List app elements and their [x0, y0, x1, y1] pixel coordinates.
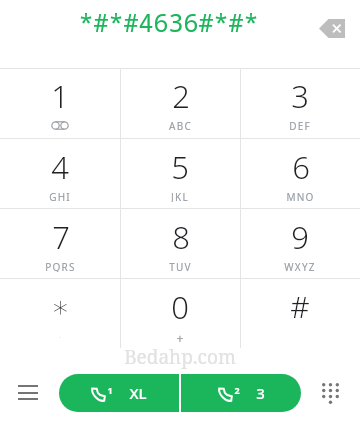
button[interactable]: 8 — [120, 209, 240, 278]
staticText: WXYZ — [284, 260, 316, 272]
staticText: 7 — [52, 216, 70, 258]
button[interactable]: 9 — [240, 209, 360, 278]
button[interactable]: 1 — [0, 68, 120, 138]
staticText: XL — [129, 383, 147, 403]
button[interactable]: 2 — [181, 374, 301, 412]
button[interactable]: Dialpad — [308, 371, 352, 415]
button[interactable]: # — [240, 279, 360, 348]
button[interactable]: ∗ — [0, 279, 120, 348]
button[interactable]: 6 — [240, 139, 360, 208]
staticText: 2 — [172, 75, 190, 117]
staticText: PQRS — [45, 260, 76, 272]
staticText: 2 — [234, 384, 240, 396]
staticText: 9 — [291, 216, 309, 258]
staticText: 1 — [51, 75, 69, 117]
staticText: # — [290, 286, 310, 327]
staticText: 3 — [291, 75, 309, 117]
staticText: GHI — [49, 190, 71, 202]
button[interactable]: 1 — [59, 374, 179, 412]
button[interactable]: 0 — [120, 279, 240, 348]
staticText: *#*#4636#*#* — [78, 5, 259, 39]
staticText: MNO — [286, 190, 315, 202]
staticText: 8 — [172, 216, 190, 258]
staticText: 4 — [51, 146, 69, 188]
button[interactable]: 4 — [0, 139, 120, 208]
staticText: DEF — [289, 119, 311, 131]
staticText: 6 — [292, 146, 310, 188]
staticText: Bedahp.com — [124, 344, 236, 370]
button[interactable]: 5 — [120, 139, 240, 208]
staticText: TUV — [169, 260, 192, 272]
staticText: 3 — [256, 383, 265, 403]
staticText: + — [176, 330, 185, 342]
button[interactable]: 2 — [120, 68, 240, 138]
staticText: JKL — [171, 190, 189, 202]
staticText: ABC — [169, 119, 192, 131]
staticText: ∗ — [51, 289, 70, 324]
button[interactable]: 7 — [0, 209, 120, 278]
staticText: 1 — [107, 384, 113, 396]
button[interactable]: 3 — [240, 68, 360, 138]
button[interactable]: Menu — [6, 371, 50, 415]
staticText: 5 — [171, 146, 189, 188]
staticText: 0 — [171, 286, 189, 328]
button[interactable]: Backspace — [312, 8, 352, 48]
